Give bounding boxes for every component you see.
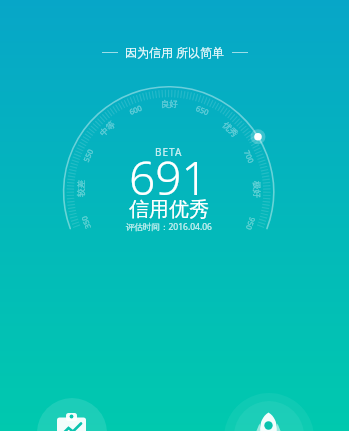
staticText: 691 — [129, 146, 208, 209]
staticText: 优秀 — [220, 120, 240, 139]
button[interactable]: 信用生活 — [224, 393, 314, 431]
staticText: 信用优秀 — [129, 197, 209, 222]
button[interactable]: 信用报告 — [37, 398, 107, 431]
staticText: 950 — [244, 216, 258, 231]
staticText: 极好 — [251, 181, 262, 198]
staticText: 550 — [81, 148, 95, 163]
staticText: 350 — [79, 215, 93, 230]
staticText: 因为信用 所以简单 — [125, 44, 225, 60]
staticText: 较差 — [76, 180, 87, 197]
staticText: 700 — [242, 148, 256, 164]
staticText: BETA — [155, 145, 183, 159]
staticText: 650 — [195, 103, 210, 117]
staticText: 评估时间：2016.04.06 — [126, 221, 212, 233]
staticText: 600 — [128, 103, 143, 117]
staticText: 中等 — [98, 119, 118, 139]
staticText: 良好 — [161, 99, 178, 110]
